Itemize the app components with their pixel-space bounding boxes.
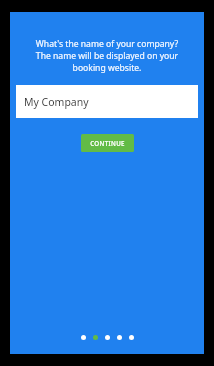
button[interactable]: Page 5 bbox=[129, 335, 134, 340]
staticText: My Company bbox=[24, 95, 89, 109]
button[interactable]: Page 1 bbox=[81, 335, 86, 340]
button[interactable]: CONTINUE bbox=[81, 134, 134, 152]
button[interactable]: Page 2 bbox=[93, 335, 98, 340]
button[interactable]: My Company bbox=[16, 85, 198, 118]
button[interactable]: Page 4 bbox=[117, 335, 122, 340]
button[interactable]: Page 3 bbox=[105, 335, 110, 340]
staticText: What's the name of your company? The nam… bbox=[18, 38, 196, 74]
staticText: CONTINUE bbox=[90, 139, 125, 147]
